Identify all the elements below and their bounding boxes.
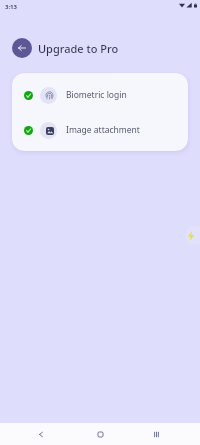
button[interactable]: Back: [27, 423, 55, 445]
staticText: Biometric login: [66, 89, 127, 101]
button[interactable]: Back: [12, 38, 32, 58]
button[interactable]: Biometric login: [12, 82, 188, 108]
staticText: Image attachment: [66, 124, 140, 136]
staticText: Upgrade to Pro: [38, 41, 119, 56]
button[interactable]: Home: [86, 423, 114, 445]
button[interactable]: Recents: [142, 423, 170, 445]
button[interactable]: Upgrade: [185, 226, 200, 245]
staticText: 3:13: [5, 3, 17, 11]
button[interactable]: Image attachment: [12, 117, 188, 143]
